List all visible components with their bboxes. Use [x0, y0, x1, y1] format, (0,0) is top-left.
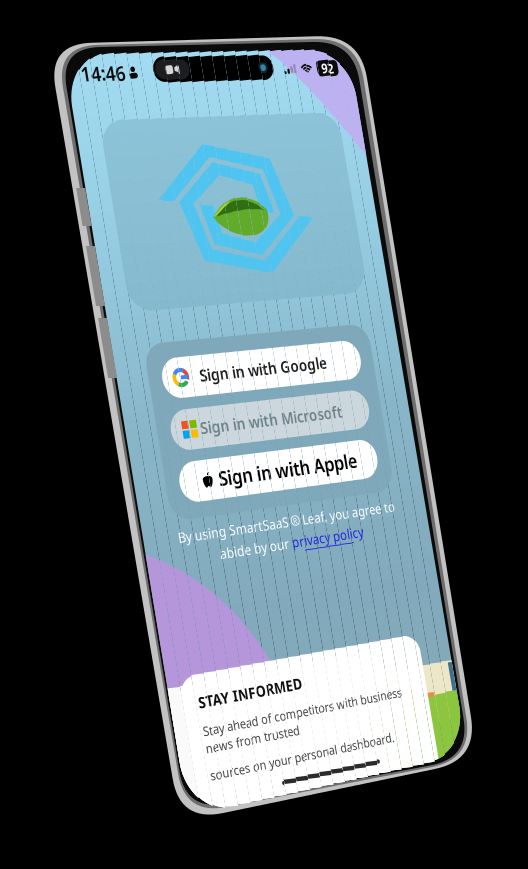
- button[interactable]: Sign in with Apple: [58, 464, 334, 510]
- button[interactable]: Sign in with Google: [58, 346, 334, 392]
- button[interactable]: privacy policy: [195, 560, 297, 582]
- button[interactable]: Sign in with Apple: [58, 464, 334, 510]
- button[interactable]: Sign in with Apple: [58, 464, 334, 510]
- button[interactable]: Sign in with Microsoft: [58, 405, 334, 451]
- button[interactable]: Sign in with Microsoft: [58, 405, 334, 451]
- button[interactable]: Sign in with Apple: [58, 464, 334, 510]
- button[interactable]: Sign in with Apple: [58, 464, 334, 510]
- button[interactable]: Sign in with Google: [58, 346, 334, 392]
- button[interactable]: Sign in with Apple: [58, 464, 334, 510]
- button[interactable]: Sign in with Apple: [58, 464, 334, 510]
- button[interactable]: Sign in with Google: [58, 346, 334, 392]
- button[interactable]: Sign in with Apple: [58, 464, 334, 510]
- staticText: Sign in with Microsoft: [97, 416, 295, 440]
- button[interactable]: privacy policy: [195, 560, 297, 582]
- button[interactable]: Sign in with Apple: [58, 464, 334, 510]
- button[interactable]: Sign in with Microsoft: [58, 405, 334, 451]
- button[interactable]: privacy policy: [195, 560, 297, 582]
- button[interactable]: Sign in with Apple: [58, 464, 334, 510]
- button[interactable]: Sign in with Microsoft: [58, 405, 334, 451]
- button[interactable]: privacy policy: [195, 560, 297, 582]
- button[interactable]: Sign in with Microsoft: [58, 405, 334, 451]
- button[interactable]: Sign in with Google: [58, 346, 334, 392]
- button[interactable]: Sign in with Microsoft: [58, 405, 334, 451]
- button[interactable]: Sign in with Apple: [58, 464, 334, 510]
- button[interactable]: Sign in with Apple: [58, 464, 334, 510]
- button[interactable]: Sign in with Microsoft: [58, 405, 334, 451]
- button[interactable]: Sign in with Google: [58, 346, 334, 392]
- button[interactable]: Sign in with Google: [58, 346, 334, 392]
- button[interactable]: Sign in with Google: [58, 346, 334, 392]
- button[interactable]: Sign in with Microsoft: [58, 405, 334, 451]
- button[interactable]: Sign in with Google: [58, 346, 334, 392]
- button[interactable]: Sign in with Apple: [58, 464, 334, 510]
- button[interactable]: Sign in with Microsoft: [58, 405, 334, 451]
- button[interactable]: Sign in with Google: [58, 346, 334, 392]
- button[interactable]: privacy policy: [195, 560, 297, 582]
- button[interactable]: Sign in with Apple: [58, 464, 334, 510]
- button[interactable]: Sign in with Apple: [58, 464, 334, 510]
- staticText: Stay ahead of competitors with business …: [36, 754, 313, 793]
- button[interactable]: privacy policy: [195, 560, 297, 582]
- button[interactable]: privacy policy: [195, 560, 297, 582]
- button[interactable]: Sign in with Google: [58, 346, 334, 392]
- button[interactable]: Sign in with Microsoft: [58, 405, 334, 451]
- button[interactable]: Sign in with Microsoft: [58, 405, 334, 451]
- button[interactable]: Sign in with Google: [58, 346, 334, 392]
- button[interactable]: Sign in with Google: [58, 346, 334, 392]
- button[interactable]: Sign in with Microsoft: [58, 405, 334, 451]
- button[interactable]: Sign in with Microsoft: [58, 405, 334, 451]
- button[interactable]: Sign in with Microsoft: [58, 405, 334, 451]
- button[interactable]: privacy policy: [195, 560, 297, 582]
- button[interactable]: Sign in with Google: [58, 346, 334, 392]
- button[interactable]: Sign in with Microsoft: [58, 405, 334, 451]
- button[interactable]: Sign in with Google: [58, 346, 334, 392]
- button[interactable]: Sign in with Google: [58, 346, 334, 392]
- button[interactable]: Sign in with Google: [58, 346, 334, 392]
- button[interactable]: Sign in with Apple: [58, 464, 334, 510]
- button[interactable]: privacy policy: [195, 560, 297, 582]
- button[interactable]: Sign in with Apple: [58, 464, 334, 510]
- button[interactable]: Sign in with Google: [58, 346, 334, 392]
- button[interactable]: Sign in with Microsoft: [58, 405, 334, 451]
- button[interactable]: Sign in with Apple: [58, 464, 334, 510]
- button[interactable]: privacy policy: [195, 560, 297, 582]
- button[interactable]: Sign in with Apple: [58, 464, 334, 510]
- button[interactable]: privacy policy: [195, 560, 297, 582]
- button[interactable]: Sign in with Apple: [58, 464, 334, 510]
- button[interactable]: privacy policy: [195, 560, 297, 582]
- button[interactable]: Sign in with Apple: [58, 464, 334, 510]
- staticText: sources on your personal dashboard.: [36, 804, 292, 823]
- button[interactable]: Sign in with Google: [58, 346, 334, 392]
- button[interactable]: Sign in with Google: [58, 346, 334, 392]
- button[interactable]: privacy policy: [195, 560, 297, 582]
- button[interactable]: Sign in with Microsoft: [58, 405, 334, 451]
- button[interactable]: Sign in with Google: [58, 346, 334, 392]
- button[interactable]: Sign in with Microsoft: [58, 405, 334, 451]
- button[interactable]: Sign in with Apple: [58, 464, 334, 510]
- button[interactable]: privacy policy: [195, 560, 297, 582]
- button[interactable]: Sign in with Microsoft: [58, 405, 334, 451]
- button[interactable]: Sign in with Microsoft: [58, 405, 334, 451]
- button[interactable]: Sign in with Google: [58, 346, 334, 392]
- button[interactable]: Sign in with Microsoft: [58, 405, 334, 451]
- button[interactable]: Sign in with Google: [58, 346, 334, 392]
- button[interactable]: privacy policy: [195, 560, 297, 582]
- button[interactable]: privacy policy: [195, 560, 297, 582]
- button[interactable]: privacy policy: [195, 560, 297, 582]
- button[interactable]: Sign in with Google: [58, 346, 334, 392]
- button[interactable]: Sign in with Apple: [58, 464, 334, 510]
- button[interactable]: privacy policy: [195, 560, 297, 582]
- button[interactable]: Sign in with Google: [58, 346, 334, 392]
- button[interactable]: privacy policy: [195, 560, 297, 582]
- button[interactable]: Sign in with Apple: [58, 464, 334, 510]
- button[interactable]: privacy policy: [195, 560, 297, 582]
- button[interactable]: Sign in with Microsoft: [58, 405, 334, 451]
- button[interactable]: privacy policy: [195, 560, 297, 582]
- button[interactable]: Sign in with Microsoft: [58, 405, 334, 451]
- staticText: privacy policy: [195, 560, 297, 581]
- button[interactable]: Sign in with Microsoft: [58, 405, 334, 451]
- button[interactable]: privacy policy: [195, 560, 297, 582]
- button[interactable]: privacy policy: [195, 560, 297, 582]
- button[interactable]: privacy policy: [195, 560, 297, 582]
